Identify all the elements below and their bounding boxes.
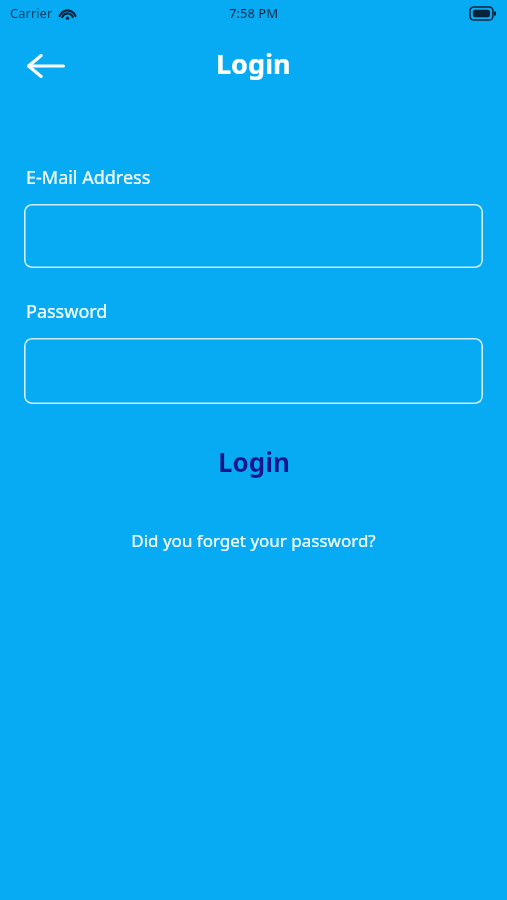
button[interactable]: Login [24, 438, 483, 484]
staticText: 7:58 PM [229, 4, 279, 22]
button[interactable]: Did you forget your password? [24, 523, 483, 557]
staticText: E-Mail Address [26, 165, 151, 190]
staticText: Login [218, 444, 290, 479]
button[interactable] [24, 338, 483, 404]
button[interactable]: Back [18, 38, 74, 94]
staticText: Password [26, 299, 108, 324]
staticText: Carrier [10, 4, 53, 22]
staticText: Login [216, 45, 291, 82]
button[interactable] [24, 204, 483, 268]
staticText: Did you forget your password? [131, 529, 376, 552]
